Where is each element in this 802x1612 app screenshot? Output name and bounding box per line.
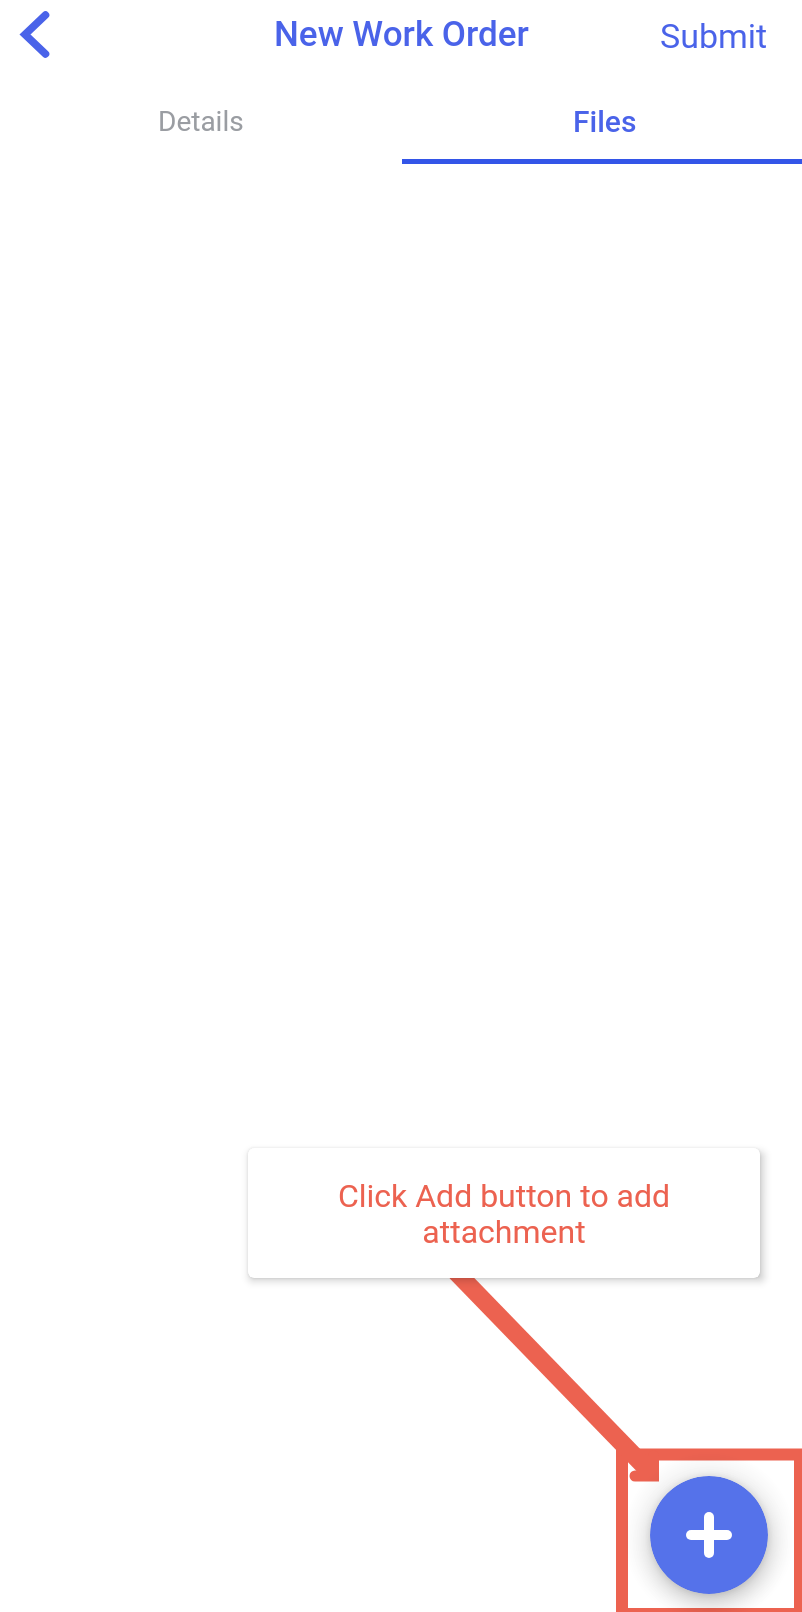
staticText: Submit (660, 16, 768, 56)
button[interactable]: Add attachment (650, 1476, 768, 1594)
button[interactable]: Back (0, 0, 70, 70)
button[interactable]: Files (401, 0, 802, 163)
staticText: Click Add button to add attachment (324, 1177, 684, 1250)
button[interactable]: Details (0, 0, 401, 163)
staticText: Details (158, 105, 244, 138)
staticText: New Work Order (274, 14, 529, 55)
button[interactable]: Submit (640, 11, 788, 61)
button[interactable]: Click Add button to add attachment (248, 1148, 760, 1278)
staticText: Files (573, 104, 637, 139)
